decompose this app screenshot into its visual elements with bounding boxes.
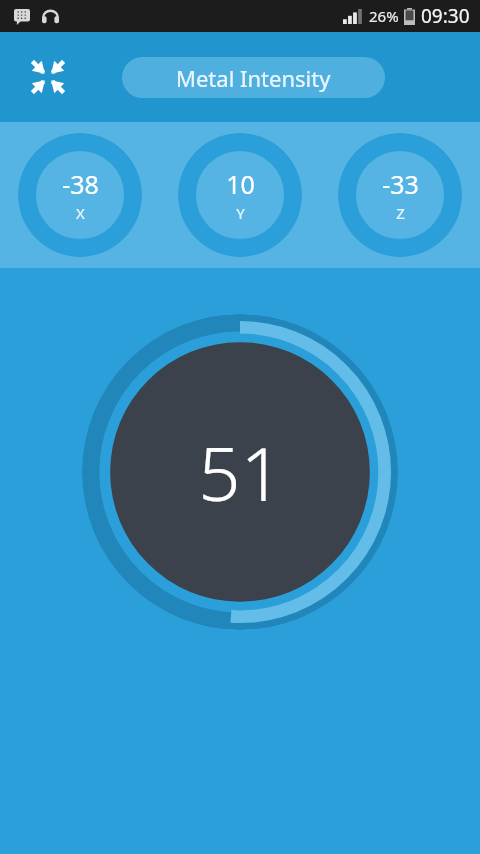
button[interactable]: -38 xyxy=(18,133,142,257)
staticText: Z xyxy=(396,203,405,223)
staticText: 26% xyxy=(369,6,399,26)
button[interactable]: 10 xyxy=(178,133,302,257)
staticText: -33 xyxy=(382,167,419,201)
staticText: Y xyxy=(236,203,245,223)
button[interactable]: Collapse xyxy=(24,53,72,101)
button[interactable]: 51 xyxy=(82,314,398,630)
staticText: 51 xyxy=(198,422,283,523)
staticText: Metal Intensity xyxy=(176,63,331,93)
staticText: X xyxy=(76,203,85,223)
button[interactable]: Metal Intensity xyxy=(122,57,385,98)
staticText: 10 xyxy=(226,167,255,201)
button[interactable]: -33 xyxy=(338,133,462,257)
staticText: -38 xyxy=(62,167,99,201)
staticText: 09:30 xyxy=(421,3,470,29)
